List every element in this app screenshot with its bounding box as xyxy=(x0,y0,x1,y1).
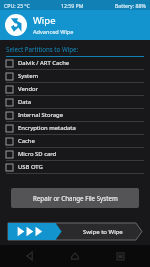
button[interactable]: System xyxy=(0,70,150,83)
button[interactable]: Back xyxy=(15,245,45,267)
staticText: Encryption metadata xyxy=(18,124,76,132)
staticText: 12:59 PM xyxy=(61,2,84,9)
button[interactable]: Vendor xyxy=(0,83,150,96)
staticText: Micro SD card xyxy=(18,150,57,158)
button[interactable]: TWRP logo xyxy=(0,10,150,40)
staticText: Battery: 88% xyxy=(115,2,146,9)
button[interactable]: Encryption metadata xyxy=(0,122,150,135)
staticText: Internal Storage xyxy=(18,111,64,119)
button[interactable]: Recent apps xyxy=(105,245,135,267)
staticText: Wipe xyxy=(33,14,56,27)
button[interactable]: Home xyxy=(60,245,90,267)
staticText: Select Partitions to Wipe: xyxy=(6,45,79,53)
staticText: Vendor xyxy=(18,85,38,93)
button[interactable]: Repair or Change File System xyxy=(11,188,139,208)
button[interactable]: Micro SD card xyxy=(0,148,150,161)
button[interactable]: Cache xyxy=(0,135,150,148)
button[interactable]: Dalvik / ART Cache xyxy=(0,57,150,70)
other: TWRP logo xyxy=(5,14,27,36)
button[interactable]: USB OTG xyxy=(0,161,150,174)
staticText: Advanced Wipe xyxy=(33,28,74,36)
staticText: Dalvik / ART Cache xyxy=(18,59,70,67)
staticText: Data xyxy=(18,98,32,106)
staticText: Repair or Change File System xyxy=(33,194,118,202)
staticText: System xyxy=(18,72,39,80)
staticText: Cache xyxy=(18,137,35,145)
staticText: Swipe to Wipe xyxy=(83,228,123,236)
staticText: USB OTG xyxy=(18,163,43,171)
staticText: CPU: 23 °C xyxy=(4,2,30,9)
button[interactable]: Internal Storage xyxy=(0,109,150,122)
button[interactable]: Data xyxy=(0,96,150,109)
button[interactable]: Swipe to Wipe xyxy=(8,223,142,240)
